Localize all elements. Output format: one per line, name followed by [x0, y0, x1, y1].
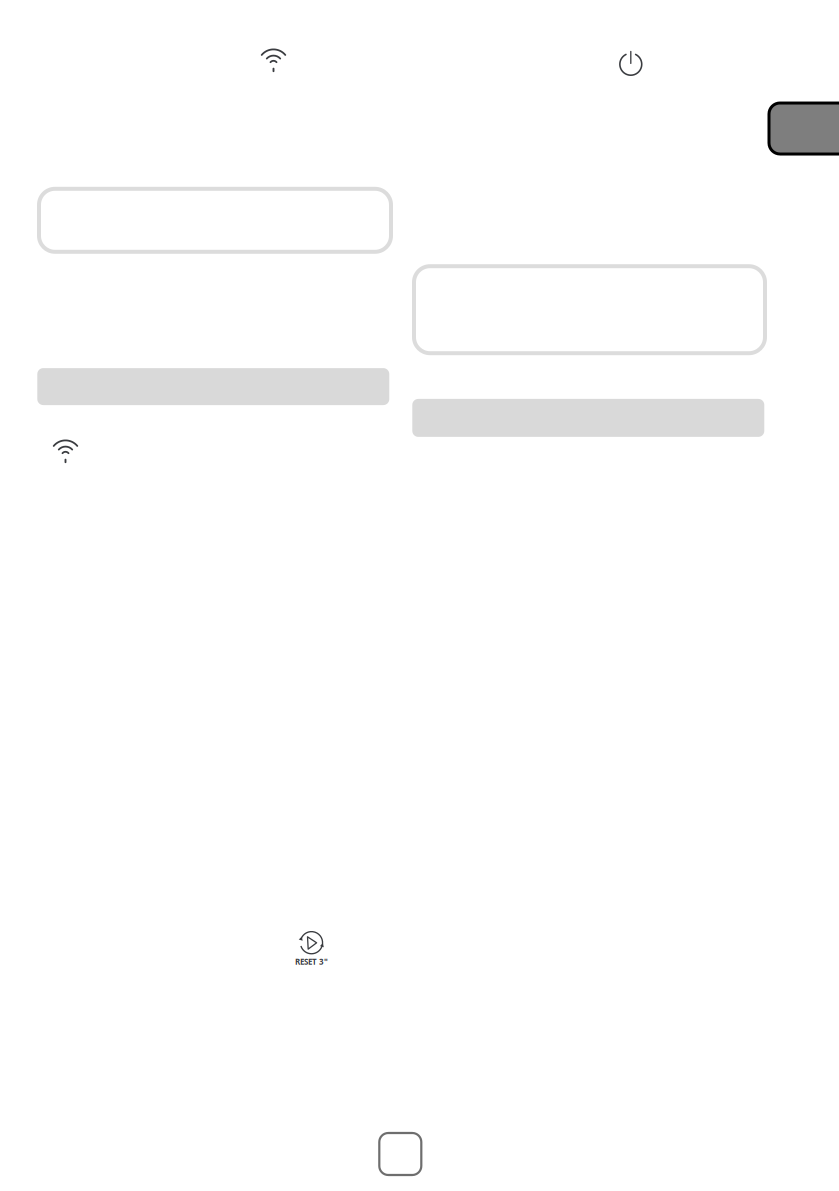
button[interactable]: Selected option — [769, 103, 839, 154]
button[interactable]: Stop — [379, 1133, 421, 1175]
button[interactable]: Reset 3 seconds — [295, 931, 328, 967]
button[interactable]: Field — [39, 189, 391, 252]
staticText: RESET 3" — [295, 956, 328, 967]
button[interactable]: Wi-Fi — [53, 441, 78, 463]
button[interactable]: Field — [414, 266, 765, 353]
button[interactable]: Power — [619, 51, 642, 76]
button[interactable]: Wi-Fi — [261, 50, 286, 72]
